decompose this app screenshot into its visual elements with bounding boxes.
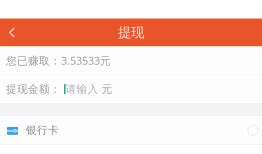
button[interactable]: 银行卡	[0, 116, 262, 144]
staticText: 提现	[118, 24, 144, 41]
staticText: 银行卡	[26, 123, 59, 137]
staticText: 提现金额：	[6, 82, 61, 96]
staticText: 请输入	[66, 82, 99, 96]
staticText: 元	[102, 82, 113, 96]
button[interactable]: Back	[0, 18, 28, 46]
staticText: 您已赚取：3.53533元	[6, 53, 111, 68]
